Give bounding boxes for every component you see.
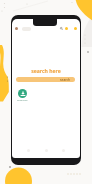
button[interactable]: Profile [15,27,18,30]
button[interactable]: Profile [60,147,67,154]
staticText: Download [17,99,28,102]
button[interactable]: More options [74,27,77,30]
staticText: search [60,78,71,82]
button[interactable]: Download [18,89,27,98]
button[interactable]: search [16,77,75,82]
button[interactable]: Notifications [65,27,68,30]
button[interactable]: Search [60,27,63,30]
button[interactable]: Home [25,147,32,154]
button[interactable]: Explore [43,147,50,154]
staticText: search here [12,67,80,74]
